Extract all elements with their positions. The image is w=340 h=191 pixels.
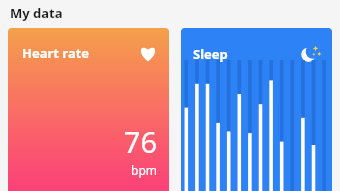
- button[interactable]: Heart rate: [8, 28, 169, 191]
- staticText: My data: [10, 4, 63, 22]
- other: Heart rate: [138, 43, 158, 63]
- staticText: 76: [123, 122, 157, 161]
- staticText: Sleep: [193, 45, 228, 63]
- other: Sleep: [300, 43, 321, 64]
- button[interactable]: Sleep: [181, 28, 332, 191]
- staticText: Heart rate: [22, 44, 90, 62]
- staticText: bpm: [131, 162, 157, 178]
